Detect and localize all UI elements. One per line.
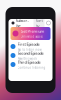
staticText: Subscribe [15,18,28,28]
staticText: Unlimited access [20,35,42,38]
button[interactable]: Sort by [33,17,44,29]
button[interactable]: Third Episode [8,60,52,69]
staticText: Second Episode [17,51,43,56]
staticText: Get Premium [20,29,44,34]
button[interactable]: Subscribe [10,18,29,28]
staticText: Continue listening [17,66,45,69]
staticText: Third Episode [17,60,40,65]
staticText: Sort by [35,18,42,28]
staticText: New this week [17,57,36,60]
staticText: Tap to listen now [17,48,41,51]
button[interactable]: Second Episode [8,51,52,60]
button[interactable]: First Episode [8,42,52,51]
staticText: First Episode [17,42,39,47]
button[interactable]: Account [46,21,50,25]
